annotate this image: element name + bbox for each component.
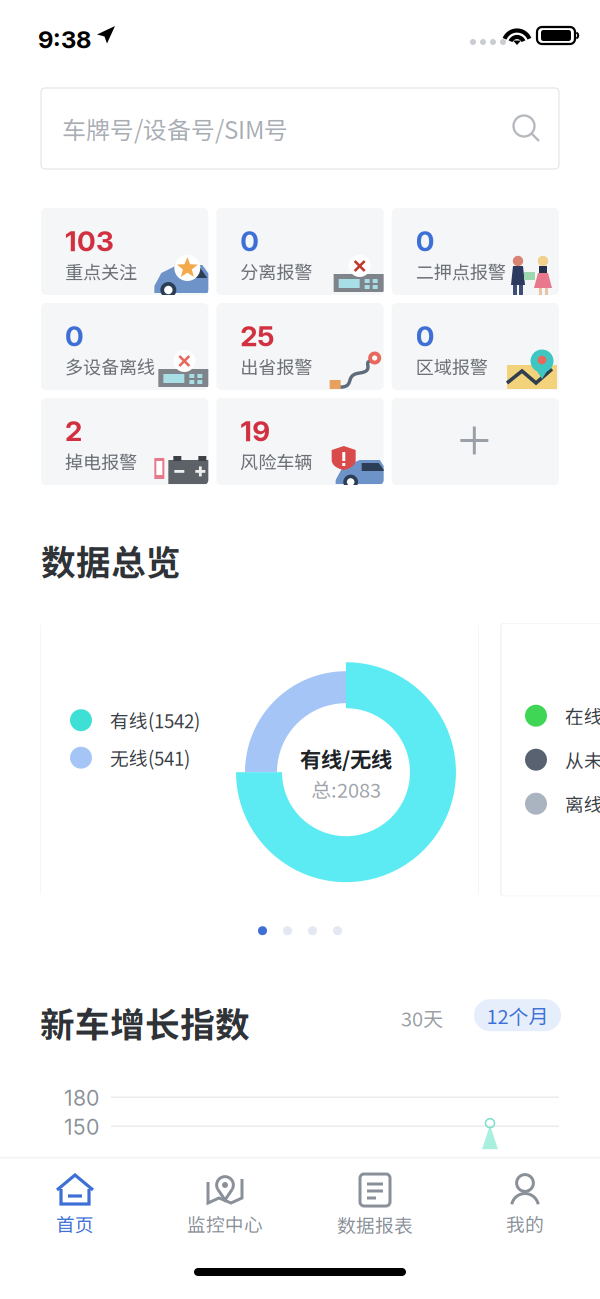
staticText: 离线(723)	[565, 790, 600, 817]
staticText: 103	[65, 224, 114, 258]
staticText: 掉电报警	[65, 448, 137, 474]
staticText: 0	[416, 319, 435, 353]
staticText: 30天	[401, 1003, 443, 1032]
staticText: 监控中心	[187, 1210, 263, 1237]
staticText: 我的	[506, 1210, 544, 1237]
staticText: 总:2083	[311, 775, 381, 804]
staticText: 180	[64, 1085, 99, 1111]
button[interactable]: 30天	[401, 1003, 443, 1032]
staticText: 150	[64, 1114, 99, 1140]
staticText: 重点关注	[65, 258, 137, 284]
button[interactable]: 添加	[392, 398, 559, 485]
staticText: 0	[416, 224, 435, 258]
button[interactable]: 首页	[0, 1159, 150, 1245]
staticText: 0	[240, 224, 259, 258]
staticText: 2	[65, 414, 82, 448]
staticText: 9:38	[38, 25, 91, 54]
staticText: 从未(120)	[565, 746, 600, 773]
staticText: 0	[65, 319, 84, 353]
staticText: 多设备离线	[65, 353, 155, 379]
staticText: 二押点报警	[416, 258, 506, 284]
button[interactable]: 103	[41, 208, 208, 295]
staticText: 新车增长指数	[40, 997, 250, 1047]
button[interactable]: 12个月	[474, 999, 561, 1031]
staticText: 无线(541)	[110, 744, 190, 771]
button[interactable]: 监控中心	[150, 1159, 300, 1245]
staticText: 数据报表	[337, 1211, 413, 1238]
staticText: 有线/无线	[300, 743, 392, 774]
button[interactable]: 2	[41, 398, 208, 485]
button[interactable]: 我的	[450, 1159, 600, 1245]
button[interactable]: 0	[392, 303, 559, 390]
staticText: 风险车辆	[240, 448, 312, 474]
button[interactable]: 新车增长指数	[40, 997, 250, 1047]
button[interactable]: 0	[41, 303, 208, 390]
staticText: 车牌号/设备号/SIM号	[62, 111, 288, 146]
staticText: 19	[240, 414, 270, 448]
staticText: 12个月	[486, 1001, 548, 1030]
staticText: 在线(1240)	[565, 702, 600, 729]
staticText: 分离报警	[240, 258, 312, 284]
button[interactable]: 数据报表	[300, 1159, 450, 1245]
button[interactable]: 25	[216, 303, 384, 390]
staticText: 首页	[56, 1210, 94, 1237]
staticText: 有线(1542)	[110, 707, 200, 734]
button[interactable]: 0	[392, 208, 559, 295]
staticText: 25	[240, 319, 274, 353]
staticText: 数据总览	[41, 535, 181, 585]
staticText: 出省报警	[240, 353, 312, 379]
button[interactable]: 19	[216, 398, 384, 485]
button[interactable]: 0	[216, 208, 384, 295]
staticText: 区域报警	[416, 353, 488, 379]
